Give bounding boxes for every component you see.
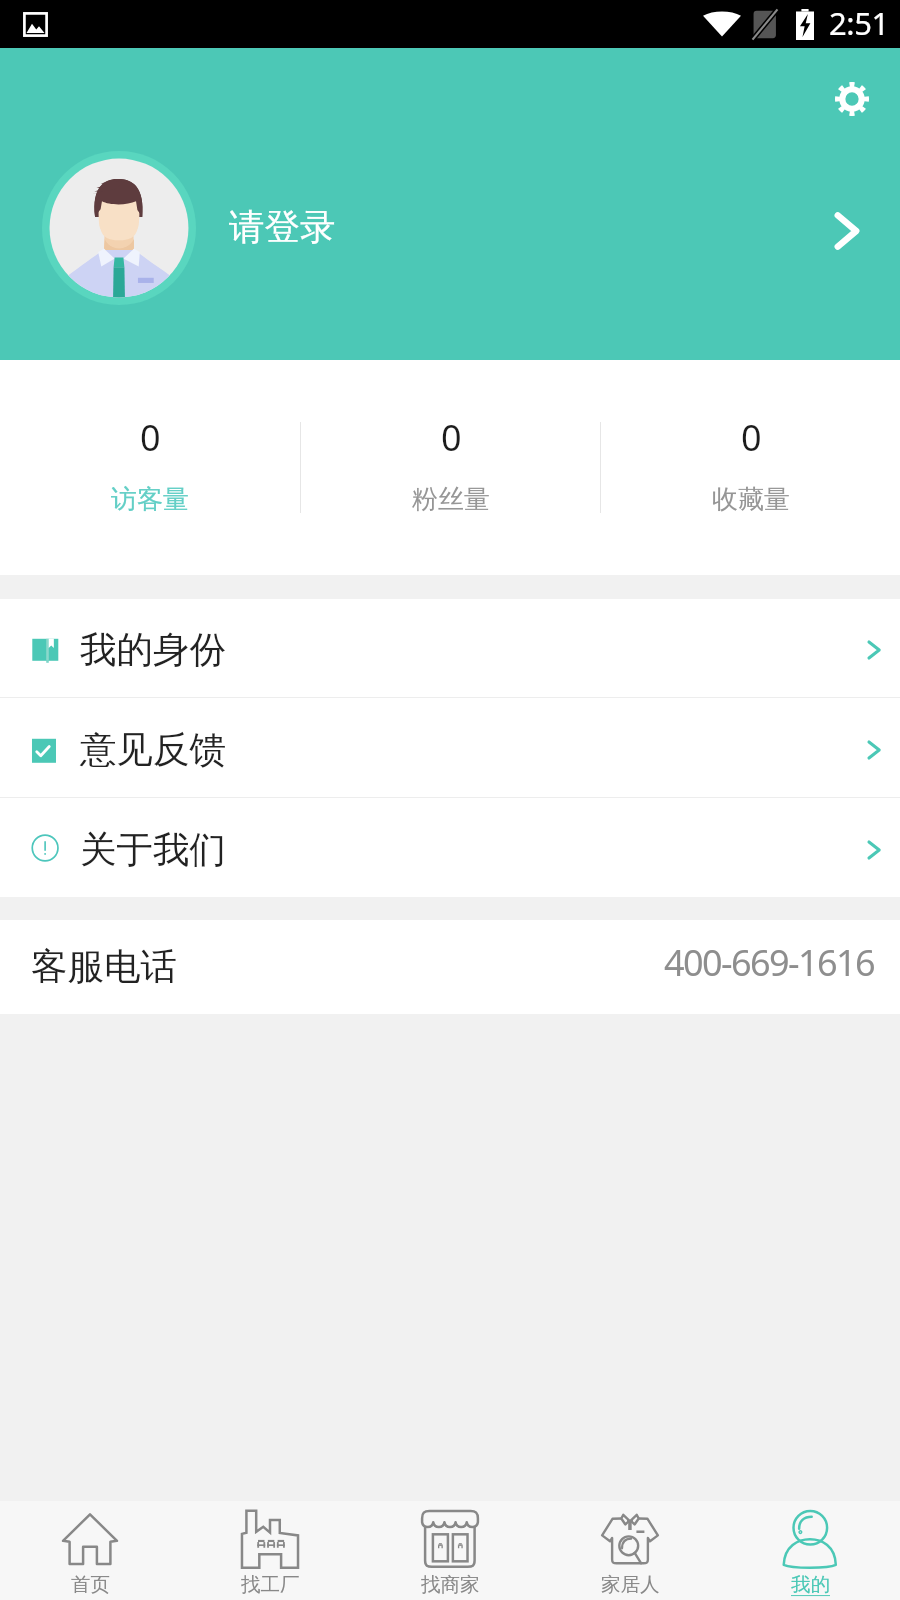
staticText: 0 xyxy=(741,413,762,462)
staticText: 找商家 xyxy=(421,1572,480,1597)
staticText: 关于我们 xyxy=(80,827,226,873)
staticText: 粉丝量 xyxy=(412,483,490,516)
staticText: 0 xyxy=(441,413,462,462)
button[interactable]: 0 xyxy=(301,360,600,575)
staticText: 访客量 xyxy=(111,483,189,516)
staticText: 收藏量 xyxy=(712,483,790,516)
staticText: 0 xyxy=(140,413,161,462)
staticText: 首页 xyxy=(71,1572,110,1597)
staticText: 请登录 xyxy=(229,205,336,250)
staticText: 400-669-1616 xyxy=(664,938,874,987)
button[interactable]: 客服电话 xyxy=(0,920,900,1014)
button[interactable]: 关于我们 xyxy=(0,798,900,897)
button[interactable]: 首页 xyxy=(0,1501,180,1600)
staticText: 我的身份 xyxy=(80,627,226,673)
button[interactable]: 家居人 xyxy=(540,1501,720,1600)
staticText: 我的 xyxy=(791,1572,830,1597)
staticText: 找工厂 xyxy=(241,1572,300,1597)
staticText: 意见反馈 xyxy=(80,727,226,773)
button[interactable]: 意见反馈 xyxy=(0,698,900,797)
button[interactable]: 找商家 xyxy=(360,1501,540,1600)
button[interactable]: Settings xyxy=(835,82,869,116)
button[interactable]: 0 xyxy=(0,360,300,575)
button[interactable]: 0 xyxy=(601,360,900,575)
staticText: 家居人 xyxy=(601,1572,660,1597)
button[interactable]: 我的身份 xyxy=(0,599,900,697)
button[interactable]: 请登录 xyxy=(0,48,900,360)
button[interactable]: 我的 xyxy=(720,1501,900,1600)
staticText: 客服电话 xyxy=(31,944,177,990)
button[interactable]: 找工厂 xyxy=(180,1501,360,1600)
staticText: 2:51 xyxy=(829,2,889,44)
